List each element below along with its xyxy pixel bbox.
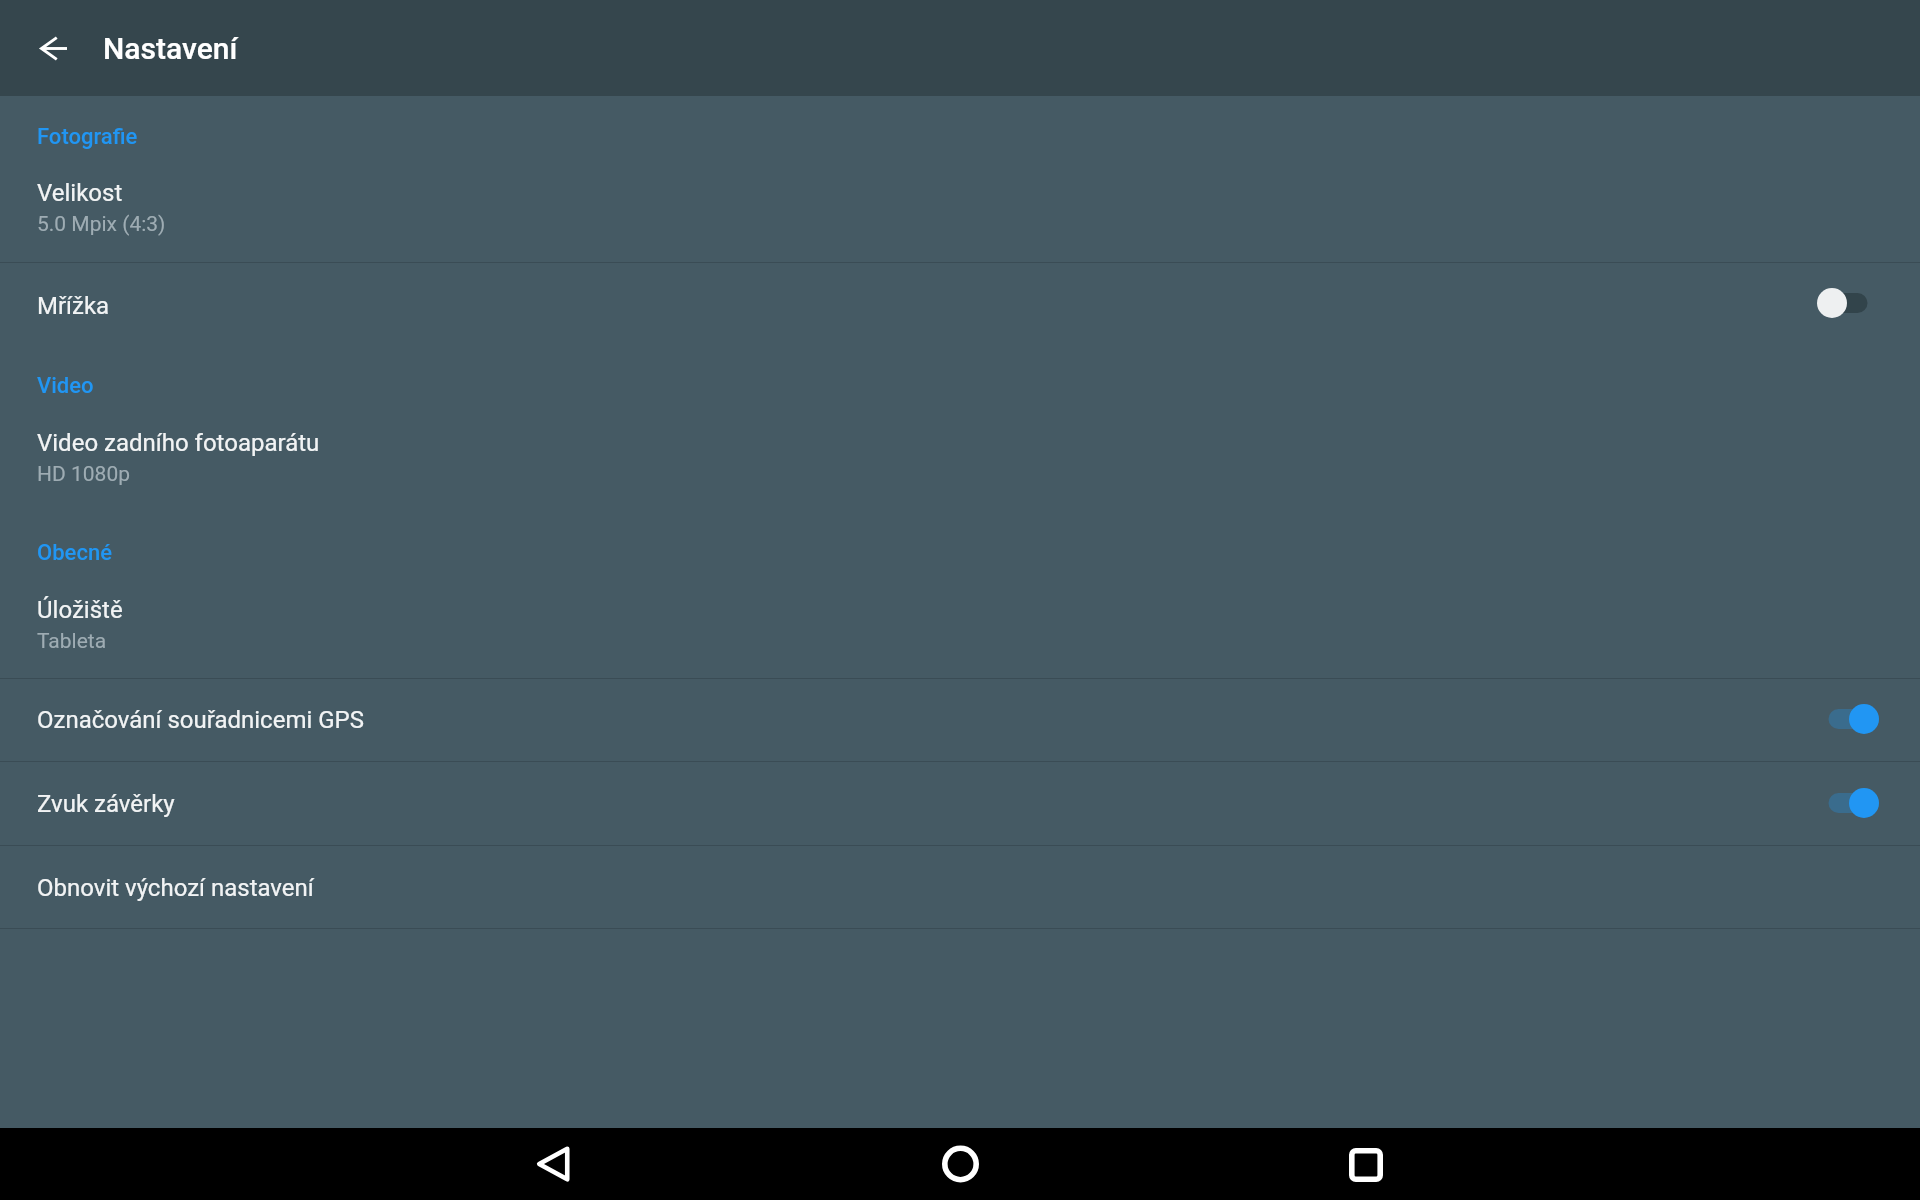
staticText: Zvuk závěrky bbox=[37, 790, 175, 818]
staticText: Nastavení bbox=[103, 31, 238, 66]
button[interactable]: Označování souřadnicemi GPS, on bbox=[1817, 704, 1879, 734]
button[interactable]: Mřížka bbox=[0, 263, 1920, 345]
button[interactable]: Označování souřadnicemi GPS bbox=[0, 679, 1920, 761]
staticText: HD 1080p bbox=[37, 462, 130, 487]
staticText: Video bbox=[37, 373, 94, 399]
staticText: Fotografie bbox=[37, 124, 138, 150]
staticText: Obecné bbox=[37, 540, 112, 566]
staticText: Mřížka bbox=[37, 292, 110, 320]
staticText: Tableta bbox=[37, 629, 107, 654]
button[interactable]: Video zadního fotoaparátu bbox=[0, 407, 1920, 511]
button[interactable]: Home bbox=[924, 1128, 996, 1200]
button[interactable]: Velikost bbox=[0, 158, 1920, 262]
staticText: Úložiště bbox=[37, 596, 123, 624]
button[interactable]: Recent apps bbox=[1330, 1128, 1402, 1200]
staticText: Označování souřadnicemi GPS bbox=[37, 706, 364, 734]
button[interactable]: Mřížka, off bbox=[1817, 288, 1879, 318]
button[interactable]: Úložiště bbox=[0, 573, 1920, 678]
button[interactable]: Back bbox=[517, 1128, 589, 1200]
button[interactable]: Obnovit výchozí nastavení bbox=[0, 846, 1920, 928]
staticText: Obnovit výchozí nastavení bbox=[37, 874, 314, 902]
staticText: Video zadního fotoaparátu bbox=[37, 429, 320, 457]
button[interactable]: Zvuk závěrky bbox=[0, 762, 1920, 845]
button[interactable]: Navigate up bbox=[29, 24, 77, 72]
staticText: Velikost bbox=[37, 179, 123, 207]
button[interactable]: Zvuk závěrky, on bbox=[1817, 788, 1879, 818]
staticText: 5.0 Mpix (4:3) bbox=[37, 212, 166, 237]
